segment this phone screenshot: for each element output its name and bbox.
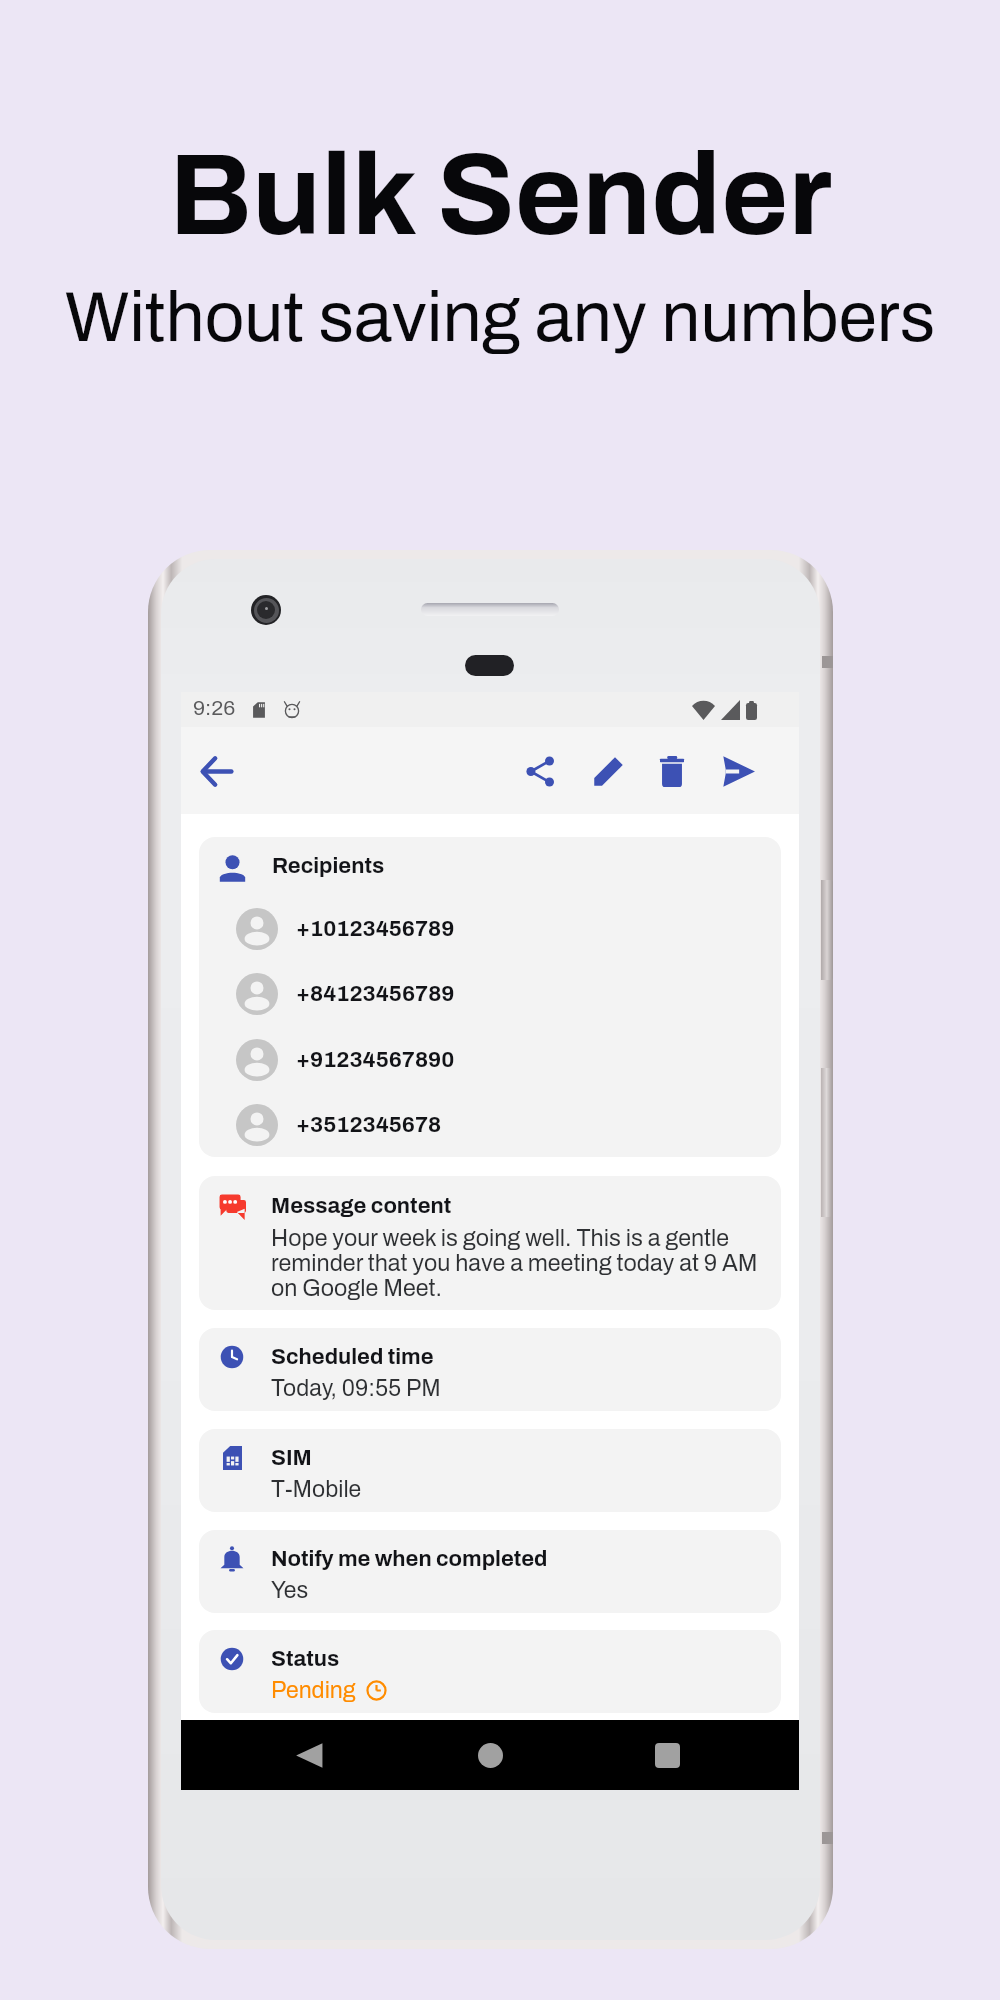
staticText: +84123456789 xyxy=(296,982,455,1006)
button[interactable]: Scheduled time xyxy=(199,1328,781,1411)
button[interactable]: Back xyxy=(188,743,244,799)
button[interactable]: +91234567890 xyxy=(199,1036,781,1084)
button[interactable]: +84123456789 xyxy=(199,970,781,1018)
staticText: Recipients xyxy=(272,854,385,878)
button[interactable]: Notify me when completed xyxy=(199,1530,781,1613)
staticText: Message content xyxy=(271,1194,452,1218)
staticText: T-Mobile xyxy=(271,1477,362,1502)
staticText: Pending xyxy=(271,1678,356,1703)
button[interactable]: +10123456789 xyxy=(199,905,781,953)
staticText: +3512345678 xyxy=(296,1113,442,1137)
staticText: Hope your week is going well. This is a … xyxy=(271,1226,765,1301)
staticText: Today, 09:55 PM xyxy=(271,1376,441,1401)
staticText: Scheduled time xyxy=(271,1345,434,1369)
button[interactable]: Edit xyxy=(580,743,636,799)
staticText: Without saving any numbers xyxy=(65,280,936,356)
button[interactable]: Share xyxy=(512,743,568,799)
button[interactable]: Message content xyxy=(199,1176,781,1310)
staticText: Notify me when completed xyxy=(271,1547,548,1571)
button[interactable]: Recipients xyxy=(199,837,781,1157)
staticText: Yes xyxy=(271,1578,309,1603)
staticText: 9:26 xyxy=(193,697,236,720)
button[interactable]: Back xyxy=(274,1720,344,1790)
button[interactable]: Send xyxy=(710,743,766,799)
staticText: SIM xyxy=(271,1446,312,1470)
staticText: Bulk Sender xyxy=(169,133,832,258)
staticText: +10123456789 xyxy=(296,917,455,941)
staticText: +91234567890 xyxy=(296,1048,455,1072)
button[interactable]: +3512345678 xyxy=(199,1101,781,1149)
button[interactable]: Status xyxy=(199,1630,781,1713)
button[interactable]: Recents xyxy=(632,1720,702,1790)
button[interactable]: SIM xyxy=(199,1429,781,1512)
button[interactable]: Delete xyxy=(644,743,700,799)
staticText: Status xyxy=(271,1647,340,1671)
button[interactable]: Home xyxy=(455,1720,525,1790)
